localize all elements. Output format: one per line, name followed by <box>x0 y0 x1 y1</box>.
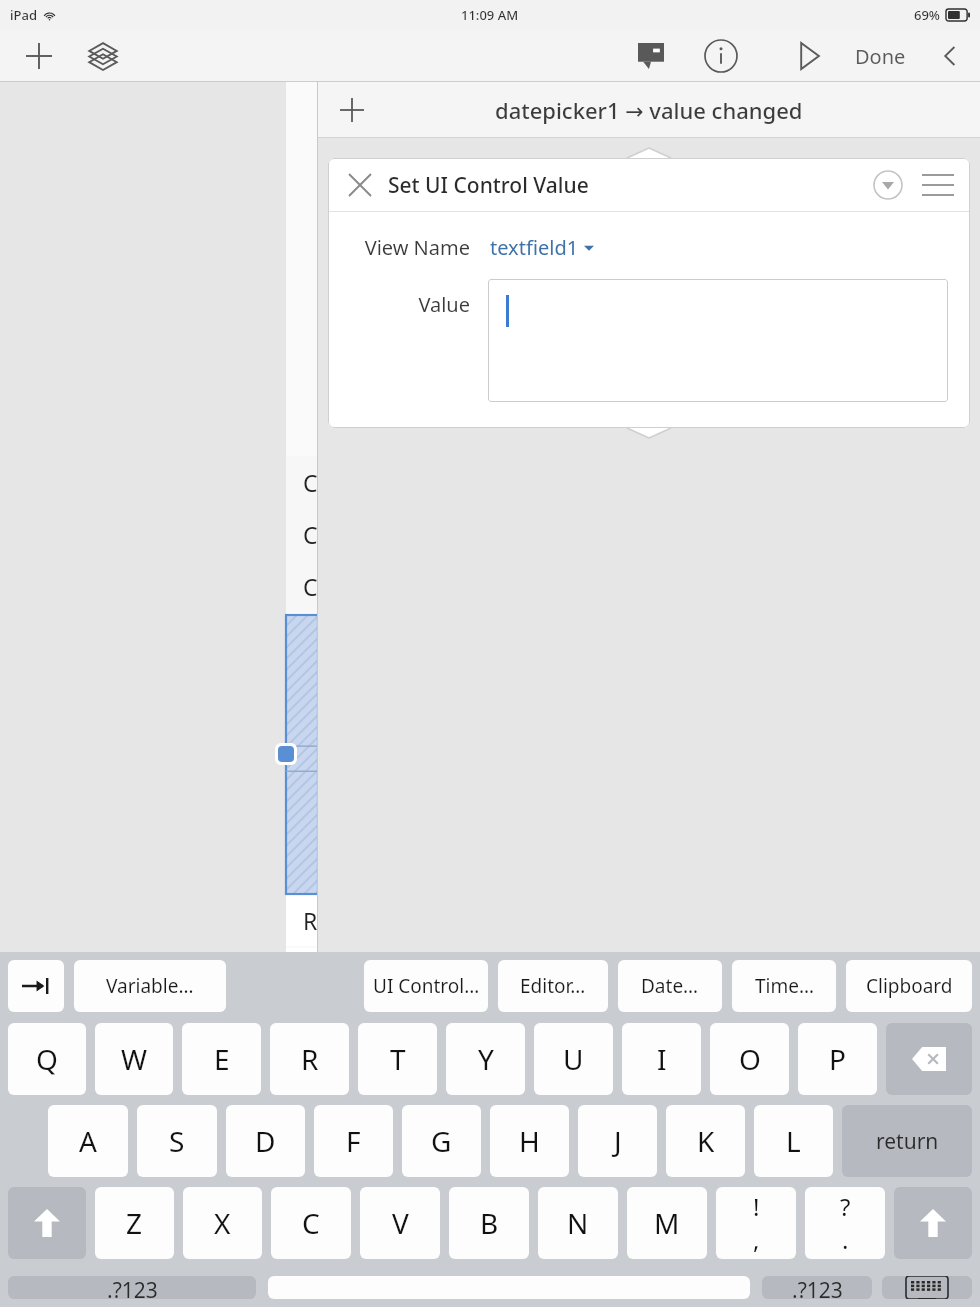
button[interactable]: Q <box>8 1023 86 1095</box>
staticText: textfield1 <box>490 234 579 261</box>
button[interactable]: Z <box>95 1187 174 1259</box>
staticText: P <box>829 1040 846 1078</box>
staticText: datepicker1 → value changed <box>495 95 803 125</box>
button[interactable]: R <box>270 1023 349 1095</box>
button[interactable]: Layers <box>80 33 126 79</box>
staticText: S <box>169 1122 185 1160</box>
button[interactable]: C <box>286 456 318 508</box>
staticText: F <box>346 1122 361 1160</box>
button[interactable]: D <box>226 1105 305 1177</box>
button[interactable]: Close <box>342 167 378 203</box>
button[interactable]: M <box>627 1187 707 1259</box>
button[interactable]: Collapse <box>868 165 908 205</box>
button[interactable]: UI Control… <box>364 960 488 1012</box>
button[interactable] <box>488 279 948 402</box>
button[interactable]: O <box>710 1023 789 1095</box>
button[interactable]: H <box>490 1105 569 1177</box>
button[interactable]: Shift <box>894 1187 972 1259</box>
staticText: K <box>697 1122 715 1160</box>
button[interactable]: Menu <box>918 165 958 205</box>
button[interactable]: Run <box>785 32 833 80</box>
button[interactable]: Time… <box>732 960 836 1012</box>
button[interactable]: T <box>358 1023 437 1095</box>
staticText: C <box>303 519 318 550</box>
button[interactable]: N <box>538 1187 618 1259</box>
staticText: ? <box>840 1190 851 1223</box>
staticText: . <box>842 1223 849 1256</box>
button[interactable]: Done <box>845 35 916 78</box>
staticText: Time… <box>755 973 814 999</box>
button[interactable]: Add block <box>332 90 372 130</box>
staticText: Set UI Control Value <box>388 171 589 200</box>
button[interactable]: Editor… <box>498 960 608 1012</box>
staticText: U <box>563 1040 584 1078</box>
button[interactable]: W <box>95 1023 173 1095</box>
staticText: I <box>657 1040 667 1078</box>
button[interactable]: .?123 <box>8 1276 256 1299</box>
button[interactable]: P <box>798 1023 877 1095</box>
button[interactable]: K <box>666 1105 745 1177</box>
staticText: B <box>480 1204 499 1242</box>
button[interactable]: G <box>402 1105 481 1177</box>
button[interactable]: C <box>286 560 318 612</box>
button[interactable]: Shift <box>8 1187 86 1259</box>
button[interactable]: Selected block <box>286 615 318 894</box>
staticText: Y <box>478 1040 494 1078</box>
button[interactable]: Add <box>16 33 62 79</box>
button[interactable]: Tab <box>8 960 64 1012</box>
staticText: Done <box>855 43 906 70</box>
button[interactable]: C <box>271 1187 351 1259</box>
button[interactable]: Clipboard <box>846 960 972 1012</box>
button[interactable]: textfield1 <box>488 230 596 265</box>
staticText: M <box>654 1204 680 1242</box>
button[interactable]: E <box>182 1023 261 1095</box>
button[interactable]: R <box>286 948 318 1000</box>
staticText: V <box>392 1204 409 1242</box>
button[interactable]: X <box>183 1187 262 1259</box>
button[interactable]: Back <box>930 36 970 76</box>
button[interactable]: S <box>137 1105 217 1177</box>
staticText: Q <box>36 1040 58 1078</box>
staticText: return <box>876 1127 939 1156</box>
button[interactable]: J <box>578 1105 657 1177</box>
staticText: Variable… <box>106 973 194 999</box>
button[interactable]: Hide keyboard <box>882 1276 972 1299</box>
button[interactable]: Info <box>697 32 745 80</box>
button[interactable]: .?123 <box>762 1276 872 1299</box>
staticText: R <box>301 1040 319 1078</box>
button[interactable]: R <box>286 894 318 946</box>
staticText: .?123 <box>792 1276 843 1299</box>
staticText: L <box>786 1122 801 1160</box>
button[interactable]: ! <box>716 1187 796 1259</box>
staticText: C <box>303 467 318 498</box>
staticText: R <box>303 905 318 936</box>
button[interactable]: I <box>622 1023 701 1095</box>
staticText: X <box>214 1204 231 1242</box>
button[interactable]: Date… <box>618 960 722 1012</box>
staticText: Clipboard <box>866 973 953 999</box>
staticText: W <box>121 1040 148 1078</box>
button[interactable]: L <box>754 1105 833 1177</box>
button[interactable]: return <box>842 1105 972 1177</box>
button[interactable]: Variable… <box>74 960 226 1012</box>
staticText: , <box>753 1223 760 1256</box>
staticText: UI Control… <box>373 973 480 999</box>
button[interactable]: A <box>48 1105 128 1177</box>
staticText: N <box>567 1204 589 1242</box>
staticText: .?123 <box>107 1276 158 1299</box>
staticText: 69% <box>914 6 940 24</box>
button[interactable]: V <box>360 1187 440 1259</box>
staticText: Editor… <box>520 973 586 999</box>
button[interactable]: B <box>449 1187 529 1259</box>
button[interactable]: Comment <box>627 32 675 80</box>
button[interactable]: ? <box>805 1187 885 1259</box>
button[interactable]: F <box>314 1105 393 1177</box>
button[interactable]: Y <box>446 1023 525 1095</box>
button[interactable]: C <box>286 508 318 560</box>
button[interactable]: U <box>534 1023 613 1095</box>
staticText: View Name <box>352 234 470 261</box>
staticText: H <box>519 1122 540 1160</box>
button[interactable]: Backspace <box>886 1023 972 1095</box>
